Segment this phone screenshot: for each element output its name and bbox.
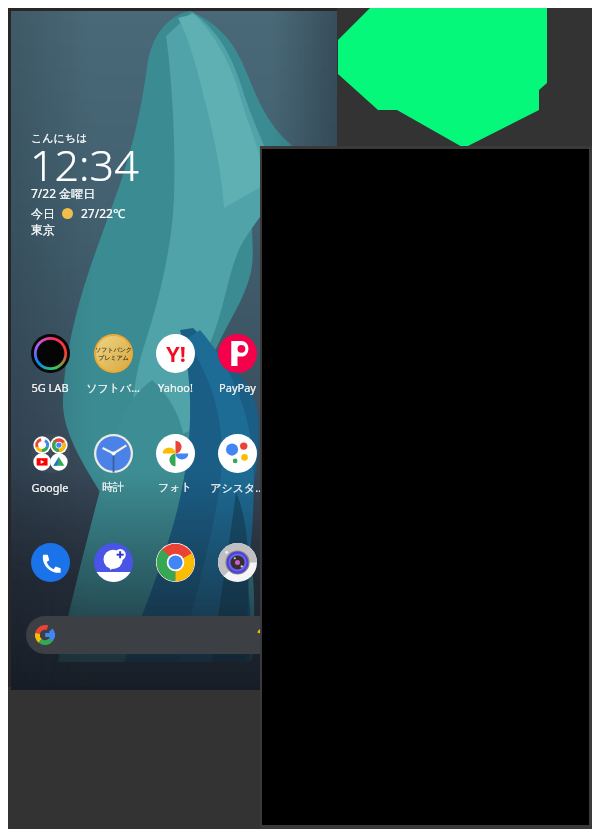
button[interactable]: chrome: [146, 543, 204, 582]
button[interactable]: paypay: [208, 334, 266, 395]
staticText: ソフトバ…: [86, 380, 140, 395]
button[interactable]: assistant: [208, 434, 266, 495]
staticText: Google: [31, 480, 69, 495]
button[interactable]: yahoo: [146, 334, 204, 395]
staticText: 5G LAB: [31, 380, 69, 395]
staticText: Y!: [166, 338, 186, 368]
button[interactable]: 5glab: [21, 334, 79, 395]
staticText: 今日: [31, 206, 55, 221]
staticText: ソフトバンク: [95, 346, 132, 354]
button[interactable]: Google search: [26, 616, 304, 654]
button[interactable]: googlefolder: [21, 434, 79, 495]
staticText: こんにちは: [31, 131, 88, 145]
staticText: Yahoo!: [158, 380, 193, 395]
button[interactable]: messages: [84, 543, 142, 582]
button[interactable]: phone: [21, 543, 79, 582]
staticText: アシスタ…: [210, 480, 264, 495]
button[interactable]: softbank: [84, 334, 142, 395]
staticText: 12:34: [30, 135, 139, 194]
staticText: 時計: [102, 480, 124, 494]
staticText: フォト: [158, 480, 192, 494]
button[interactable]: camera: [208, 543, 266, 582]
button[interactable]: photos: [146, 434, 204, 494]
staticText: 東京: [31, 222, 55, 237]
button[interactable]: clock: [84, 434, 142, 494]
staticText: PayPay: [219, 380, 256, 395]
staticText: プレミアム: [98, 354, 129, 362]
staticText: 7/22 金曜日: [31, 185, 96, 201]
staticText: 27/22℃: [81, 205, 125, 221]
